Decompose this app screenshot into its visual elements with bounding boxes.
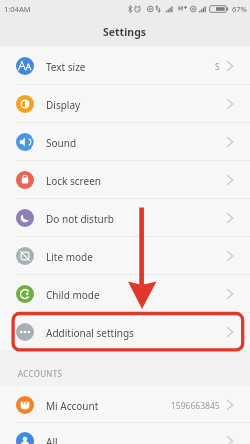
button[interactable]: Display: [0, 85, 250, 123]
staticText: Settings: [103, 25, 147, 39]
staticText: Lite mode: [46, 250, 93, 264]
staticText: S: [215, 61, 220, 73]
button[interactable]: Mi Account: [0, 386, 250, 423]
button[interactable]: Additional settings: [0, 313, 250, 350]
button[interactable]: All: [0, 423, 250, 444]
staticText: Additional settings: [46, 326, 134, 340]
button[interactable]: Sound: [0, 123, 250, 161]
staticText: All: [46, 435, 58, 444]
staticText: Mi Account: [46, 399, 99, 413]
button[interactable]: Text size: [0, 47, 250, 85]
staticText: 1596663845: [171, 400, 220, 412]
button[interactable]: Lock screen: [0, 161, 250, 199]
button[interactable]: Child mode: [0, 275, 250, 313]
staticText: Do not disturb: [46, 212, 114, 226]
staticText: Lock screen: [46, 174, 102, 188]
button[interactable]: Lite mode: [0, 237, 250, 275]
button[interactable]: Do not disturb: [0, 199, 250, 237]
staticText: 67%: [232, 4, 247, 14]
staticText: Display: [46, 98, 81, 112]
staticText: Sound: [46, 136, 77, 150]
staticText: Child mode: [46, 288, 100, 302]
staticText: ACCOUNTS: [18, 368, 63, 379]
staticText: Text size: [46, 60, 86, 74]
staticText: 1:04AM: [4, 4, 31, 14]
